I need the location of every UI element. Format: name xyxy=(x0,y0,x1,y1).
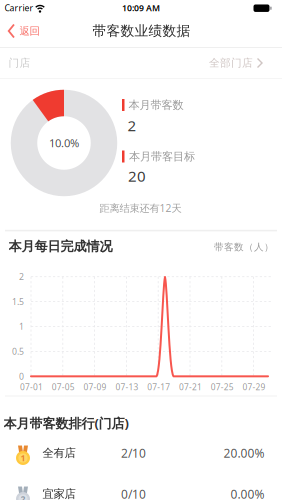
staticText: 2/10 xyxy=(121,445,146,461)
staticText: 20.00% xyxy=(223,445,264,461)
staticText: 2 xyxy=(19,271,24,283)
button[interactable]: 1 xyxy=(0,432,282,473)
staticText: 距离结束还有12天 xyxy=(99,201,181,215)
staticText: 门店 xyxy=(8,56,30,70)
staticText: 10.0% xyxy=(49,135,79,151)
staticText: 07-01 xyxy=(20,381,43,393)
staticText: 宜家店 xyxy=(42,487,75,500)
staticText: 10:09 AM xyxy=(122,2,160,14)
button[interactable]: 全部门店 xyxy=(0,48,282,78)
staticText: 全有店 xyxy=(42,446,75,460)
staticText: 07-09 xyxy=(84,381,107,393)
staticText: 0.00% xyxy=(230,486,264,500)
staticText: 本月带客数 xyxy=(128,98,183,112)
staticText: 2 xyxy=(127,115,136,136)
staticText: 全部门店 xyxy=(209,56,253,70)
staticText: 07-21 xyxy=(179,381,202,393)
staticText: Carrier xyxy=(4,2,33,14)
staticText: 20 xyxy=(128,166,146,186)
staticText: 本月每日完成情况 xyxy=(8,238,112,255)
staticText: 0/10 xyxy=(121,486,146,500)
staticText: 返回 xyxy=(19,24,39,37)
staticText: 0.5 xyxy=(12,345,24,357)
staticText: 本月带客目标 xyxy=(129,149,195,163)
staticText: 07-17 xyxy=(147,381,170,393)
staticText: 07-13 xyxy=(115,381,138,393)
staticText: 带客数（人） xyxy=(214,241,274,253)
button[interactable]: 返回 xyxy=(0,16,54,47)
staticText: 07-05 xyxy=(52,381,75,393)
staticText: 本月带客数排行(门店) xyxy=(3,414,128,432)
staticText: 1.5 xyxy=(12,296,24,307)
staticText: 带客数业绩数据 xyxy=(92,22,190,40)
button[interactable]: 2 xyxy=(0,473,282,500)
staticText: 0 xyxy=(19,370,24,382)
staticText: 1 xyxy=(20,452,25,464)
staticText: 07-25 xyxy=(211,381,234,393)
staticText: 2 xyxy=(20,493,25,500)
staticText: 07-29 xyxy=(243,381,266,393)
staticText: 1 xyxy=(19,321,24,332)
